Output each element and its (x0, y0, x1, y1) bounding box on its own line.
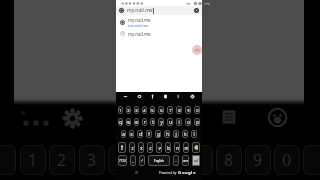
button[interactable]: v (156, 142, 162, 153)
button[interactable]: u (167, 118, 173, 126)
button[interactable]: Switch keyboard (135, 171, 138, 174)
staticText: p (196, 119, 199, 125)
staticText: q (119, 119, 122, 125)
staticText: my.nail.me (128, 23, 149, 27)
button[interactable]: a (121, 130, 126, 138)
staticText: v (158, 145, 161, 151)
staticText: m (195, 47, 200, 54)
button[interactable]: Settings (188, 92, 197, 101)
staticText: g (157, 131, 160, 137)
button[interactable]: i (176, 118, 182, 126)
button[interactable]: Voice input (148, 92, 157, 101)
staticText: English (154, 159, 164, 163)
button[interactable]: 2 (126, 106, 131, 114)
button[interactable]: my.nail.me (116, 29, 202, 38)
button[interactable]: Profile (192, 45, 202, 55)
button[interactable]: my.nail.me (116, 6, 202, 15)
staticText: Powered by (159, 171, 178, 175)
button[interactable]: 5 (150, 106, 155, 114)
button[interactable]: q (118, 118, 123, 126)
button[interactable]: j (173, 130, 179, 138)
button[interactable]: Clipboard (161, 92, 170, 101)
staticText: 1 (119, 108, 122, 113)
staticText: g (188, 170, 191, 176)
button[interactable]: Backspace (192, 142, 200, 153)
button[interactable]: d (137, 130, 143, 138)
button[interactable]: 3 (134, 106, 139, 114)
button[interactable]: t (150, 118, 155, 126)
button[interactable]: z (129, 142, 135, 153)
staticText: a (122, 131, 125, 137)
staticText: 4 (143, 108, 146, 113)
button[interactable]: r (142, 118, 147, 126)
staticText: e (193, 170, 196, 176)
staticText: 5 (151, 108, 154, 113)
staticText: .com (182, 159, 189, 163)
staticText: my.nail.me (128, 17, 151, 23)
staticText: i (178, 119, 180, 125)
staticText: ?123 (119, 159, 126, 163)
staticText: l (191, 170, 193, 176)
staticText: 3 (135, 108, 138, 113)
button[interactable]: y (158, 118, 164, 126)
button[interactable]: . (173, 155, 179, 166)
staticText: 0 (282, 149, 292, 171)
staticText: m (184, 145, 189, 151)
button[interactable]: n (174, 142, 180, 153)
button[interactable]: / (139, 155, 145, 166)
staticText: my.nail.me (127, 7, 153, 14)
button[interactable]: m (183, 142, 189, 153)
button[interactable]: c (147, 142, 153, 153)
staticText: . (175, 158, 177, 164)
button[interactable]: 4 (142, 106, 147, 114)
button[interactable]: o (185, 118, 191, 126)
staticText: r (144, 119, 146, 125)
staticText: o (182, 170, 185, 176)
staticText: w (127, 119, 131, 125)
button[interactable]: g (155, 130, 161, 138)
staticText: 6 (160, 108, 163, 113)
button[interactable]: w (126, 118, 131, 126)
button[interactable]: 6 (158, 106, 164, 114)
button[interactable]: Enter (192, 155, 200, 166)
button[interactable]: GIF (135, 92, 144, 101)
staticText: f (148, 131, 150, 137)
button[interactable]: p (194, 118, 200, 126)
staticText: l (193, 131, 195, 137)
button[interactable]: my.nail.me (116, 17, 202, 27)
staticText: 0 (196, 108, 199, 113)
staticText: e (135, 119, 138, 125)
button[interactable]: More options (121, 92, 130, 101)
button[interactable]: ?123 (118, 155, 127, 166)
button[interactable]: , (130, 155, 136, 166)
button[interactable]: English (148, 155, 170, 166)
button[interactable]: e (134, 118, 139, 126)
button[interactable]: b (165, 142, 171, 153)
button[interactable]: 1 (118, 106, 123, 114)
staticText: 8 (178, 108, 181, 113)
staticText: 7 (169, 108, 172, 113)
staticText: k (184, 131, 187, 137)
button[interactable]: 8 (176, 106, 182, 114)
button[interactable]: h (164, 130, 170, 138)
button[interactable]: Stickers (174, 92, 183, 101)
staticText: t (152, 119, 154, 125)
button[interactable]: s (129, 130, 134, 138)
staticText: 3 (87, 149, 97, 171)
button[interactable]: .com (182, 155, 189, 166)
button[interactable]: k (182, 130, 188, 138)
staticText: 9 (253, 149, 263, 171)
staticText: u (169, 119, 172, 125)
button[interactable]: 9 (185, 106, 191, 114)
staticText: 2 (127, 108, 130, 113)
button[interactable]: x (138, 142, 144, 153)
button[interactable]: f (146, 130, 152, 138)
button[interactable]: 0 (194, 106, 200, 114)
staticText: d (139, 131, 142, 137)
button[interactable]: Shift (118, 142, 126, 153)
staticText: c (149, 145, 152, 151)
button[interactable]: l (191, 130, 197, 138)
button[interactable]: Clear search (194, 8, 199, 13)
button[interactable]: 7 (167, 106, 173, 114)
staticText: 9 (187, 108, 190, 113)
